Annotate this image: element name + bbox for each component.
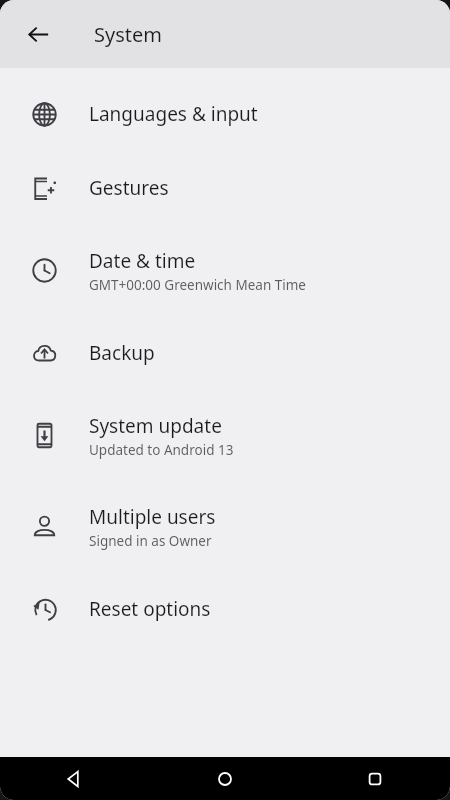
staticText: System update <box>89 413 222 439</box>
staticText: System <box>94 21 162 48</box>
button[interactable]: Backup <box>0 316 450 390</box>
staticText: GMT+00:00 Greenwich Mean Time <box>89 276 306 294</box>
staticText: Multiple users <box>89 504 216 530</box>
staticText: Updated to Android 13 <box>89 441 234 459</box>
button[interactable]: Home <box>150 757 300 800</box>
button[interactable]: Back <box>16 12 60 56</box>
staticText: Date & time <box>89 248 196 274</box>
button[interactable]: Back <box>0 757 150 800</box>
button[interactable]: Recent apps <box>300 757 450 800</box>
staticText: Gestures <box>89 175 169 201</box>
button[interactable]: Multiple users <box>0 481 450 572</box>
button[interactable]: Languages & input <box>0 77 450 151</box>
staticText: Reset options <box>89 596 211 622</box>
button[interactable]: Gestures <box>0 151 450 225</box>
staticText: Backup <box>89 340 155 366</box>
button[interactable]: System update <box>0 390 450 481</box>
button[interactable]: Date & time <box>0 225 450 316</box>
staticText: Languages & input <box>89 101 258 127</box>
staticText: Signed in as Owner <box>89 532 212 550</box>
button[interactable]: Reset options <box>0 572 450 646</box>
